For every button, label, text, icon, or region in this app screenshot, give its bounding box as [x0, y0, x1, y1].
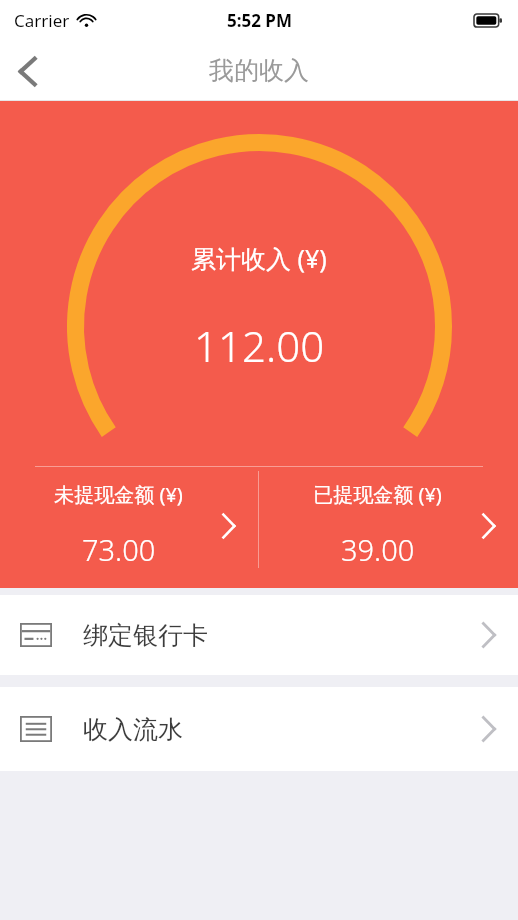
staticText: 累计收入 (¥)	[191, 241, 327, 275]
staticText: 已提现金额 (¥)	[313, 481, 442, 508]
staticText: 73.00	[82, 530, 156, 569]
staticText: 112.00	[194, 317, 325, 374]
staticText: Carrier	[14, 9, 70, 32]
button[interactable]: 未提现金额 (¥)	[0, 467, 258, 588]
button[interactable]: 收入流水	[0, 687, 518, 771]
staticText: 绑定银行卡	[83, 620, 208, 651]
button[interactable]: 绑定银行卡	[0, 595, 518, 675]
button[interactable]: Back	[0, 44, 54, 98]
staticText: 收入流水	[83, 714, 183, 745]
button[interactable]: 已提现金额 (¥)	[259, 467, 518, 588]
staticText: 39.00	[341, 530, 415, 569]
staticText: 未提现金额 (¥)	[54, 481, 183, 508]
staticText: 我的收入	[209, 55, 309, 86]
staticText: 5:52 PM	[227, 9, 292, 32]
